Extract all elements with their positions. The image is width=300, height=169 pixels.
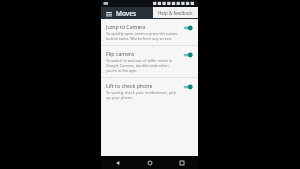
button[interactable]: Toggle setting (183, 24, 194, 32)
staticText: Help & feedback (158, 10, 193, 16)
button[interactable]: Recent apps (177, 158, 186, 167)
button[interactable]: Toggle setting (183, 51, 194, 59)
button[interactable]: Open navigation drawer (104, 9, 113, 18)
button[interactable]: Back (113, 158, 122, 167)
staticText: To quickly open camera press the power b… (106, 31, 180, 41)
staticText: To switch in and out of selfie mode in G… (106, 58, 180, 73)
button[interactable]: Help & feedback (153, 7, 198, 18)
button[interactable]: Lift to check phone (101, 78, 198, 104)
staticText: Flip camera (106, 50, 135, 57)
staticText: Jump to Camera (106, 23, 146, 30)
button[interactable]: Flip camera (101, 46, 198, 77)
staticText: Moves (116, 9, 137, 18)
staticText: To quickly check your notifications, pic… (106, 90, 180, 100)
button[interactable]: Toggle setting (183, 83, 194, 91)
staticText: Lift to check phone (106, 82, 153, 89)
button[interactable]: Jump to Camera (101, 19, 198, 45)
button[interactable]: Home (145, 158, 154, 167)
